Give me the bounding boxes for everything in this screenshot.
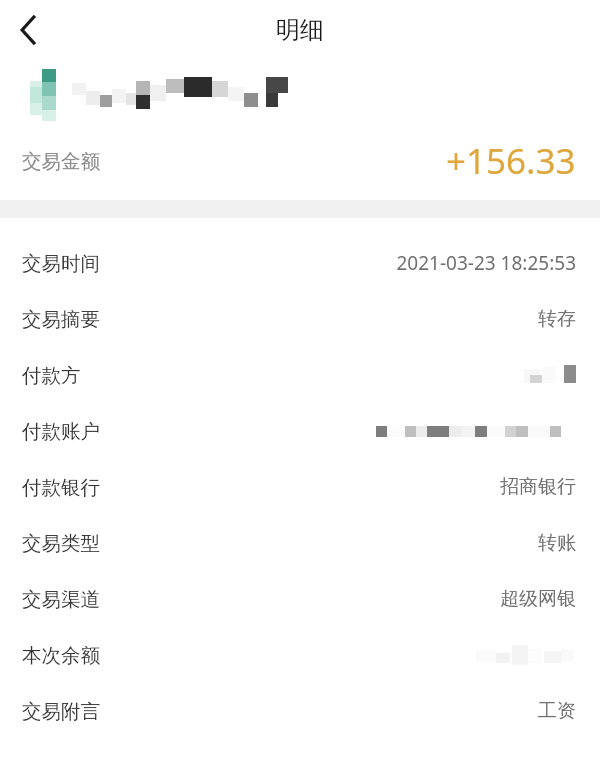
button[interactable]: 交易时间 — [0, 235, 600, 291]
staticText: 招商银行 — [500, 475, 576, 499]
button[interactable]: 付款银行 — [0, 459, 600, 515]
staticText: 交易附言 — [22, 699, 100, 724]
staticText: 交易类型 — [22, 531, 100, 556]
staticText: 转存 — [538, 307, 576, 331]
staticText: 交易时间 — [22, 251, 100, 276]
staticText: 转账 — [538, 531, 576, 555]
button[interactable]: Back — [0, 2, 56, 58]
staticText: +156.33 — [446, 137, 576, 185]
button[interactable]: 交易附言 — [0, 683, 600, 739]
staticText: 交易金额 — [22, 149, 100, 174]
button[interactable]: 交易渠道 — [0, 571, 600, 627]
staticText: 工资 — [538, 699, 576, 723]
staticText: 明细 — [276, 15, 324, 45]
staticText: 2021-03-23 18:25:53 — [396, 250, 576, 276]
button[interactable]: 付款账户 — [0, 403, 600, 459]
button[interactable]: 付款方 — [0, 347, 600, 403]
staticText: 交易渠道 — [22, 587, 100, 612]
staticText: 付款方 — [22, 363, 81, 388]
button[interactable]: 本次余额 — [0, 627, 600, 683]
staticText: 付款账户 — [22, 419, 100, 444]
button[interactable]: 交易类型 — [0, 515, 600, 571]
staticText: 付款银行 — [22, 475, 100, 500]
staticText: 本次余额 — [22, 643, 100, 668]
staticText: 超级网银 — [500, 587, 576, 611]
button[interactable]: 交易摘要 — [0, 291, 600, 347]
staticText: 交易摘要 — [22, 307, 100, 332]
